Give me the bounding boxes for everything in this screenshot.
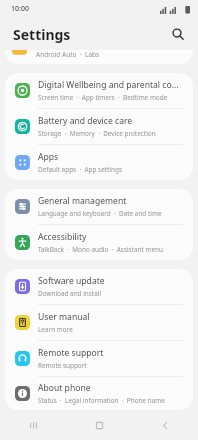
button[interactable]: Apps: [5, 145, 193, 180]
staticText: Battery and device care: [38, 115, 133, 127]
staticText: Remote support: [38, 347, 104, 359]
staticText: Storage · Memory · Device protection: [38, 129, 156, 138]
staticText: Software update: [38, 275, 105, 287]
staticText: Settings: [13, 25, 71, 44]
button[interactable]: Home: [66, 410, 132, 440]
staticText: Status · Legal information · Phone name: [38, 396, 165, 405]
button[interactable]: Accessibility: [5, 225, 193, 260]
staticText: Default apps · App settings: [38, 165, 122, 174]
staticText: 10:00: [11, 4, 29, 14]
button[interactable]: Digital Wellbeing and parental controls: [5, 73, 193, 109]
staticText: TalkBack · Mono audio · Assistant menu: [38, 245, 163, 254]
staticText: Digital Wellbeing and parental controls: [38, 79, 183, 91]
button[interactable]: Battery and device care: [5, 109, 193, 145]
button[interactable]: Android Auto · Labs: [5, 50, 193, 64]
staticText: Apps: [38, 151, 59, 163]
staticText: About phone: [38, 382, 91, 394]
staticText: User manual: [38, 311, 90, 323]
staticText: Android Auto · Labs: [36, 50, 100, 59]
staticText: Download and install: [38, 289, 102, 298]
button[interactable]: About phone: [5, 377, 193, 410]
staticText: Accessibility: [38, 231, 87, 243]
staticText: Language and keyboard · Date and time: [38, 209, 162, 218]
staticText: Learn more: [38, 325, 73, 334]
button[interactable]: General management: [5, 189, 193, 225]
staticText: General management: [38, 195, 127, 207]
button[interactable]: Recents: [0, 410, 66, 440]
button[interactable]: Remote support: [5, 341, 193, 377]
staticText: Screen time · App timers · Bedtime mode: [38, 93, 168, 102]
button[interactable]: Software update: [5, 269, 193, 305]
staticText: Remote support: [38, 361, 87, 370]
button[interactable]: User manual: [5, 305, 193, 341]
button[interactable]: Back: [132, 410, 198, 440]
button[interactable]: Search: [167, 23, 189, 45]
